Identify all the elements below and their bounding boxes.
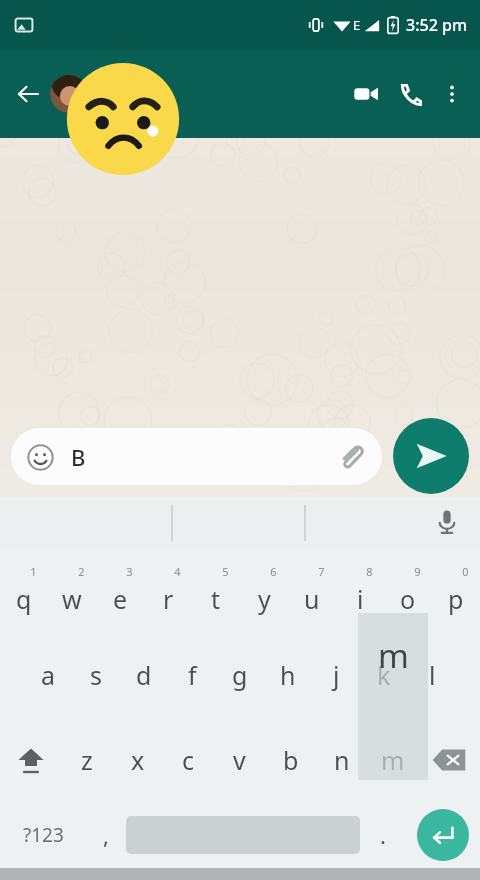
staticText: w — [62, 582, 82, 616]
button[interactable]: Contact photo — [50, 75, 88, 113]
staticText: n — [334, 743, 350, 777]
staticText: ?123 — [23, 822, 64, 848]
staticText: e — [113, 582, 128, 616]
button[interactable]: f — [168, 632, 216, 717]
staticText: , — [103, 820, 109, 850]
button[interactable]: l — [408, 632, 456, 717]
staticText: t — [211, 582, 221, 616]
button[interactable]: z — [62, 717, 112, 802]
button[interactable]: 5 — [192, 547, 240, 632]
button[interactable]: j — [312, 632, 360, 717]
staticText: Love — [98, 81, 143, 108]
staticText: m — [378, 633, 409, 678]
staticText: o — [400, 582, 416, 616]
staticText: 6 — [270, 564, 277, 579]
button[interactable]: Emoji — [11, 428, 382, 485]
button[interactable]: x — [112, 717, 163, 802]
button[interactable]: Enter — [417, 809, 469, 861]
button[interactable]: 8 — [336, 547, 384, 632]
button[interactable]: g — [216, 632, 264, 717]
button[interactable]: Send — [393, 418, 469, 494]
button[interactable]: Backspace — [418, 717, 480, 802]
button[interactable]: Attach — [334, 440, 368, 474]
button[interactable]: , — [86, 802, 126, 868]
button[interactable]: 7 — [288, 547, 336, 632]
staticText: B — [71, 442, 86, 472]
staticText: y — [258, 582, 271, 616]
staticText: a — [41, 658, 56, 692]
staticText: p — [448, 582, 464, 616]
button[interactable]: 4 — [144, 547, 192, 632]
button[interactable]: . — [360, 802, 406, 868]
button[interactable]: 1 — [0, 547, 48, 632]
staticText: l — [429, 658, 436, 692]
staticText: 8 — [366, 564, 373, 579]
button[interactable]: n — [316, 717, 367, 802]
button[interactable]: m — [367, 717, 418, 802]
staticText: f — [188, 658, 197, 692]
button[interactable]: s — [72, 632, 120, 717]
button[interactable]: Voice input — [430, 505, 464, 539]
staticText: d — [136, 658, 152, 692]
staticText: 1 — [30, 564, 37, 579]
staticText: q — [16, 582, 32, 616]
staticText: s — [90, 658, 102, 692]
staticText: u — [304, 582, 320, 616]
staticText: g — [232, 658, 248, 692]
staticText: 3 — [126, 564, 133, 579]
staticText: 2 — [78, 564, 85, 579]
staticText: m — [381, 743, 405, 777]
staticText: . — [380, 820, 386, 850]
button[interactable]: Back — [8, 74, 48, 114]
button[interactable]: v — [214, 717, 265, 802]
button[interactable]: h — [264, 632, 312, 717]
button[interactable]: Shift — [0, 717, 62, 802]
button[interactable]: d — [120, 632, 168, 717]
button[interactable]: Video call — [344, 72, 388, 116]
button[interactable]: 0 — [432, 547, 480, 632]
button[interactable]: a — [24, 632, 72, 717]
button[interactable]: 6 — [240, 547, 288, 632]
staticText: 9 — [414, 564, 421, 579]
staticText: k — [377, 658, 391, 692]
staticText: c — [182, 743, 195, 777]
staticText: 5 — [222, 564, 229, 579]
staticText: E — [353, 16, 361, 34]
button[interactable]: b — [265, 717, 316, 802]
staticText: 3:52 pm — [406, 14, 468, 36]
button[interactable]: Voice call — [388, 72, 432, 116]
button[interactable]: 3 — [96, 547, 144, 632]
staticText: h — [280, 658, 296, 692]
button[interactable]: 2 — [48, 547, 96, 632]
button[interactable]: 9 — [384, 547, 432, 632]
staticText: x — [131, 743, 145, 777]
staticText: 0 — [462, 564, 469, 579]
button[interactable]: Emoji — [25, 442, 55, 472]
staticText: z — [81, 743, 93, 777]
staticText: 7 — [318, 564, 325, 579]
staticText: j — [333, 658, 340, 692]
staticText: r — [163, 582, 174, 616]
staticText: b — [283, 743, 299, 777]
button[interactable]: k — [360, 632, 408, 717]
staticText: i — [357, 582, 364, 616]
staticText: v — [233, 743, 246, 777]
button[interactable]: c — [163, 717, 214, 802]
staticText: 4 — [174, 564, 181, 579]
button[interactable]: ?123 — [0, 802, 86, 868]
button[interactable]: More options — [432, 74, 472, 114]
